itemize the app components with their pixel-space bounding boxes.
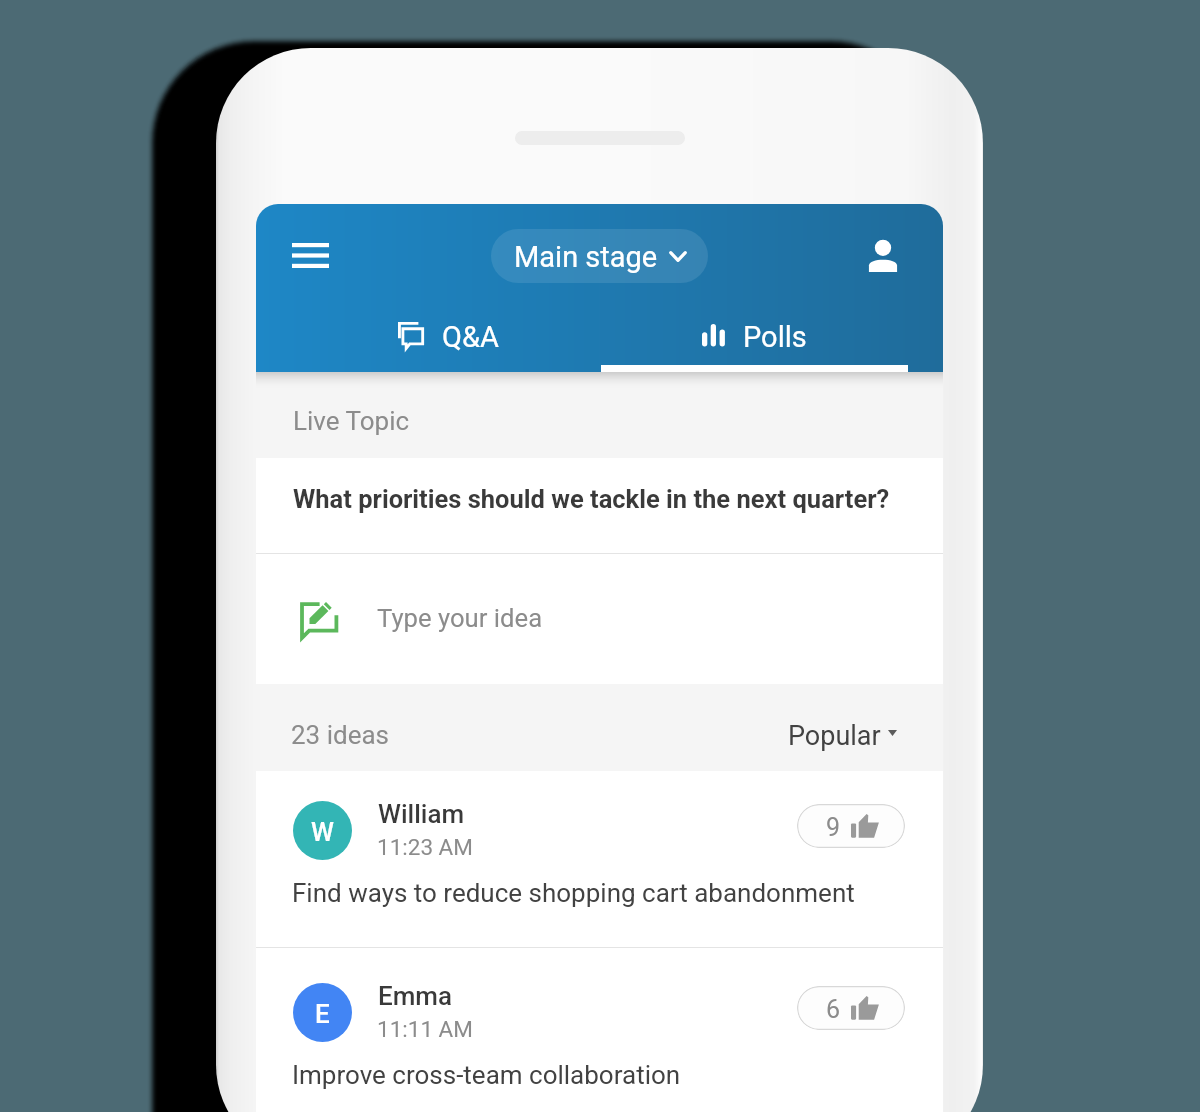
button[interactable]: W <box>256 771 943 946</box>
staticText: Live Topic <box>293 406 410 436</box>
button[interactable]: Menu <box>281 226 339 284</box>
staticText: Improve cross-team collaboration <box>292 1060 681 1090</box>
button[interactable]: E <box>256 953 943 1112</box>
button[interactable]: Popular <box>778 696 918 758</box>
button[interactable]: Like <box>797 986 905 1030</box>
staticText: Q&A <box>442 320 499 354</box>
staticText: Find ways to reduce shopping cart abando… <box>292 878 855 908</box>
staticText: Polls <box>743 320 807 354</box>
staticText: 6 <box>826 995 841 1024</box>
staticText: Main stage <box>514 240 658 274</box>
staticText: E <box>315 999 330 1029</box>
button[interactable]: What priorities should we tackle in the … <box>256 458 943 553</box>
button[interactable]: Polls <box>601 308 908 372</box>
button[interactable]: Type your idea <box>256 554 943 684</box>
staticText: 9 <box>826 813 841 842</box>
button[interactable]: Live Topic <box>256 372 943 458</box>
button[interactable]: Q&A <box>294 308 601 372</box>
staticText: 11:23 AM <box>377 834 473 860</box>
staticText: Popular <box>788 720 881 752</box>
button[interactable]: Main stage <box>491 229 708 283</box>
staticText: What priorities should we tackle in the … <box>293 484 890 514</box>
staticText: W <box>311 817 334 847</box>
button[interactable]: Like <box>797 804 905 848</box>
staticText: William <box>378 799 465 829</box>
staticText: Emma <box>378 981 453 1011</box>
staticText: 11:11 AM <box>377 1016 473 1042</box>
staticText: Type your idea <box>377 603 543 633</box>
button[interactable]: Profile <box>854 227 912 285</box>
staticText: 23 ideas <box>291 720 390 750</box>
